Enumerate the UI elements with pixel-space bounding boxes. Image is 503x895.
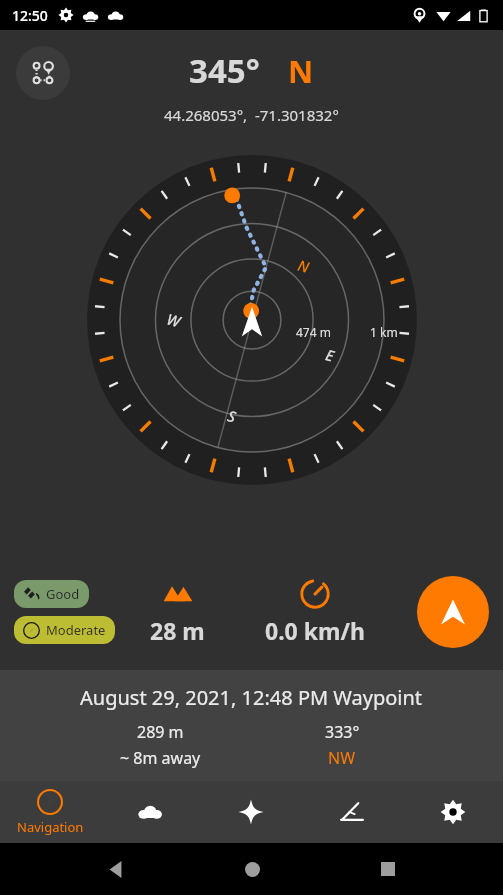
- button[interactable]: Tab: [402, 781, 503, 843]
- button[interactable]: Good: [14, 580, 89, 608]
- staticText: NW: [328, 747, 356, 769]
- button[interactable]: Waypoints: [16, 46, 70, 100]
- staticText: 345°: [189, 48, 260, 93]
- staticText: N: [288, 50, 314, 92]
- button[interactable]: Tab: [200, 781, 301, 843]
- staticText: ~ 8m away: [120, 747, 201, 769]
- staticText: 28 m: [150, 615, 205, 646]
- button[interactable]: Tab: [301, 781, 402, 843]
- staticText: E: [323, 344, 336, 366]
- button[interactable]: Start navigation: [417, 576, 489, 648]
- staticText: August 29, 2021, 12:48 PM Waypoint: [80, 684, 423, 711]
- button[interactable]: Moderate: [14, 616, 115, 644]
- staticText: 333°: [325, 721, 360, 743]
- staticText: 44.268053°, -71.301832°: [164, 105, 339, 125]
- staticText: Good: [46, 585, 80, 603]
- staticText: 474 m: [296, 324, 331, 340]
- staticText: 12:50: [12, 6, 48, 25]
- staticText: Navigation: [17, 818, 84, 836]
- staticText: 289 m: [137, 721, 184, 743]
- button[interactable]: Tab: [100, 781, 200, 843]
- staticText: W: [165, 308, 183, 331]
- button[interactable]: Navigation: [0, 781, 100, 843]
- staticText: 0.0 km/h: [265, 615, 365, 646]
- button[interactable]: August 29, 2021, 12:48 PM Waypoint: [0, 670, 503, 781]
- button[interactable]: Home: [230, 847, 274, 891]
- button[interactable]: Recents: [366, 847, 410, 891]
- button[interactable]: Back: [93, 847, 137, 891]
- staticText: N: [296, 255, 311, 277]
- staticText: Moderate: [46, 621, 106, 639]
- staticText: 1 km: [370, 324, 398, 340]
- staticText: S: [225, 405, 238, 427]
